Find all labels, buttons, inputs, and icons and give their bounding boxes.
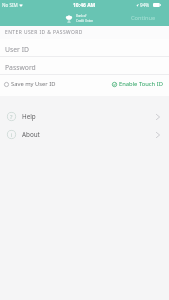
button[interactable]: ? xyxy=(0,108,169,125)
button[interactable]: Enable Touch ID xyxy=(110,78,169,90)
staticText: About xyxy=(22,130,40,139)
staticText: ? xyxy=(10,113,13,120)
staticText: 94% xyxy=(140,2,150,8)
staticText: Credit Union xyxy=(76,19,94,23)
staticText: 10:46 AM xyxy=(73,2,96,9)
staticText: Password xyxy=(5,63,36,72)
staticText: i xyxy=(11,131,13,138)
button[interactable]: Continue xyxy=(125,11,169,25)
staticText: User ID xyxy=(5,45,29,54)
staticText: Help xyxy=(22,112,36,121)
staticText: Save my User ID xyxy=(11,80,56,88)
staticText: No SIM xyxy=(2,2,18,8)
button[interactable]: Password xyxy=(0,57,169,74)
button[interactable]: Save my User ID xyxy=(0,78,58,90)
button[interactable]: User ID xyxy=(0,39,169,56)
button[interactable]: i xyxy=(0,126,169,143)
staticText: Enable Touch ID xyxy=(119,80,163,88)
staticText: Bank of xyxy=(76,14,87,18)
staticText: ENTER USER ID & PASSWORD xyxy=(5,29,83,36)
staticText: Continue xyxy=(131,14,156,22)
